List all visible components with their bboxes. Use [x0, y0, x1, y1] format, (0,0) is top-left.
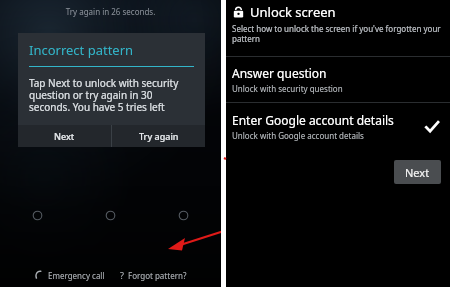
- staticText: Unlock with security question: [232, 83, 343, 94]
- button[interactable]: ?: [117, 269, 190, 281]
- staticText: Next: [405, 165, 430, 180]
- other: Selected: [424, 119, 440, 135]
- staticText: Try again: [139, 130, 179, 142]
- staticText: Forgot pattern?: [128, 270, 187, 281]
- staticText: Try again in 26 seconds.: [0, 6, 221, 17]
- button[interactable]: Next: [18, 125, 111, 147]
- other: Lock: [232, 6, 245, 19]
- staticText: Answer question: [232, 65, 327, 81]
- button[interactable]: Try again: [112, 125, 205, 147]
- staticText: Emergency call: [48, 270, 105, 281]
- staticText: ?: [120, 269, 124, 281]
- staticText: Enter Google account details: [232, 112, 394, 128]
- button[interactable]: Emergency call: [32, 270, 108, 281]
- button[interactable]: Answer question: [226, 57, 450, 102]
- staticText: Unlock screen: [250, 3, 336, 21]
- staticText: Tap Next to unlock with security questio…: [29, 76, 193, 114]
- staticText: Select how to unlock the screen if you'v…: [232, 23, 445, 44]
- staticText: Unlock with Google account details: [232, 130, 364, 141]
- staticText: Next: [54, 130, 75, 142]
- staticText: Incorrect pattern: [29, 41, 134, 59]
- button[interactable]: Enter Google account details: [226, 103, 450, 149]
- button[interactable]: Next: [394, 160, 441, 184]
